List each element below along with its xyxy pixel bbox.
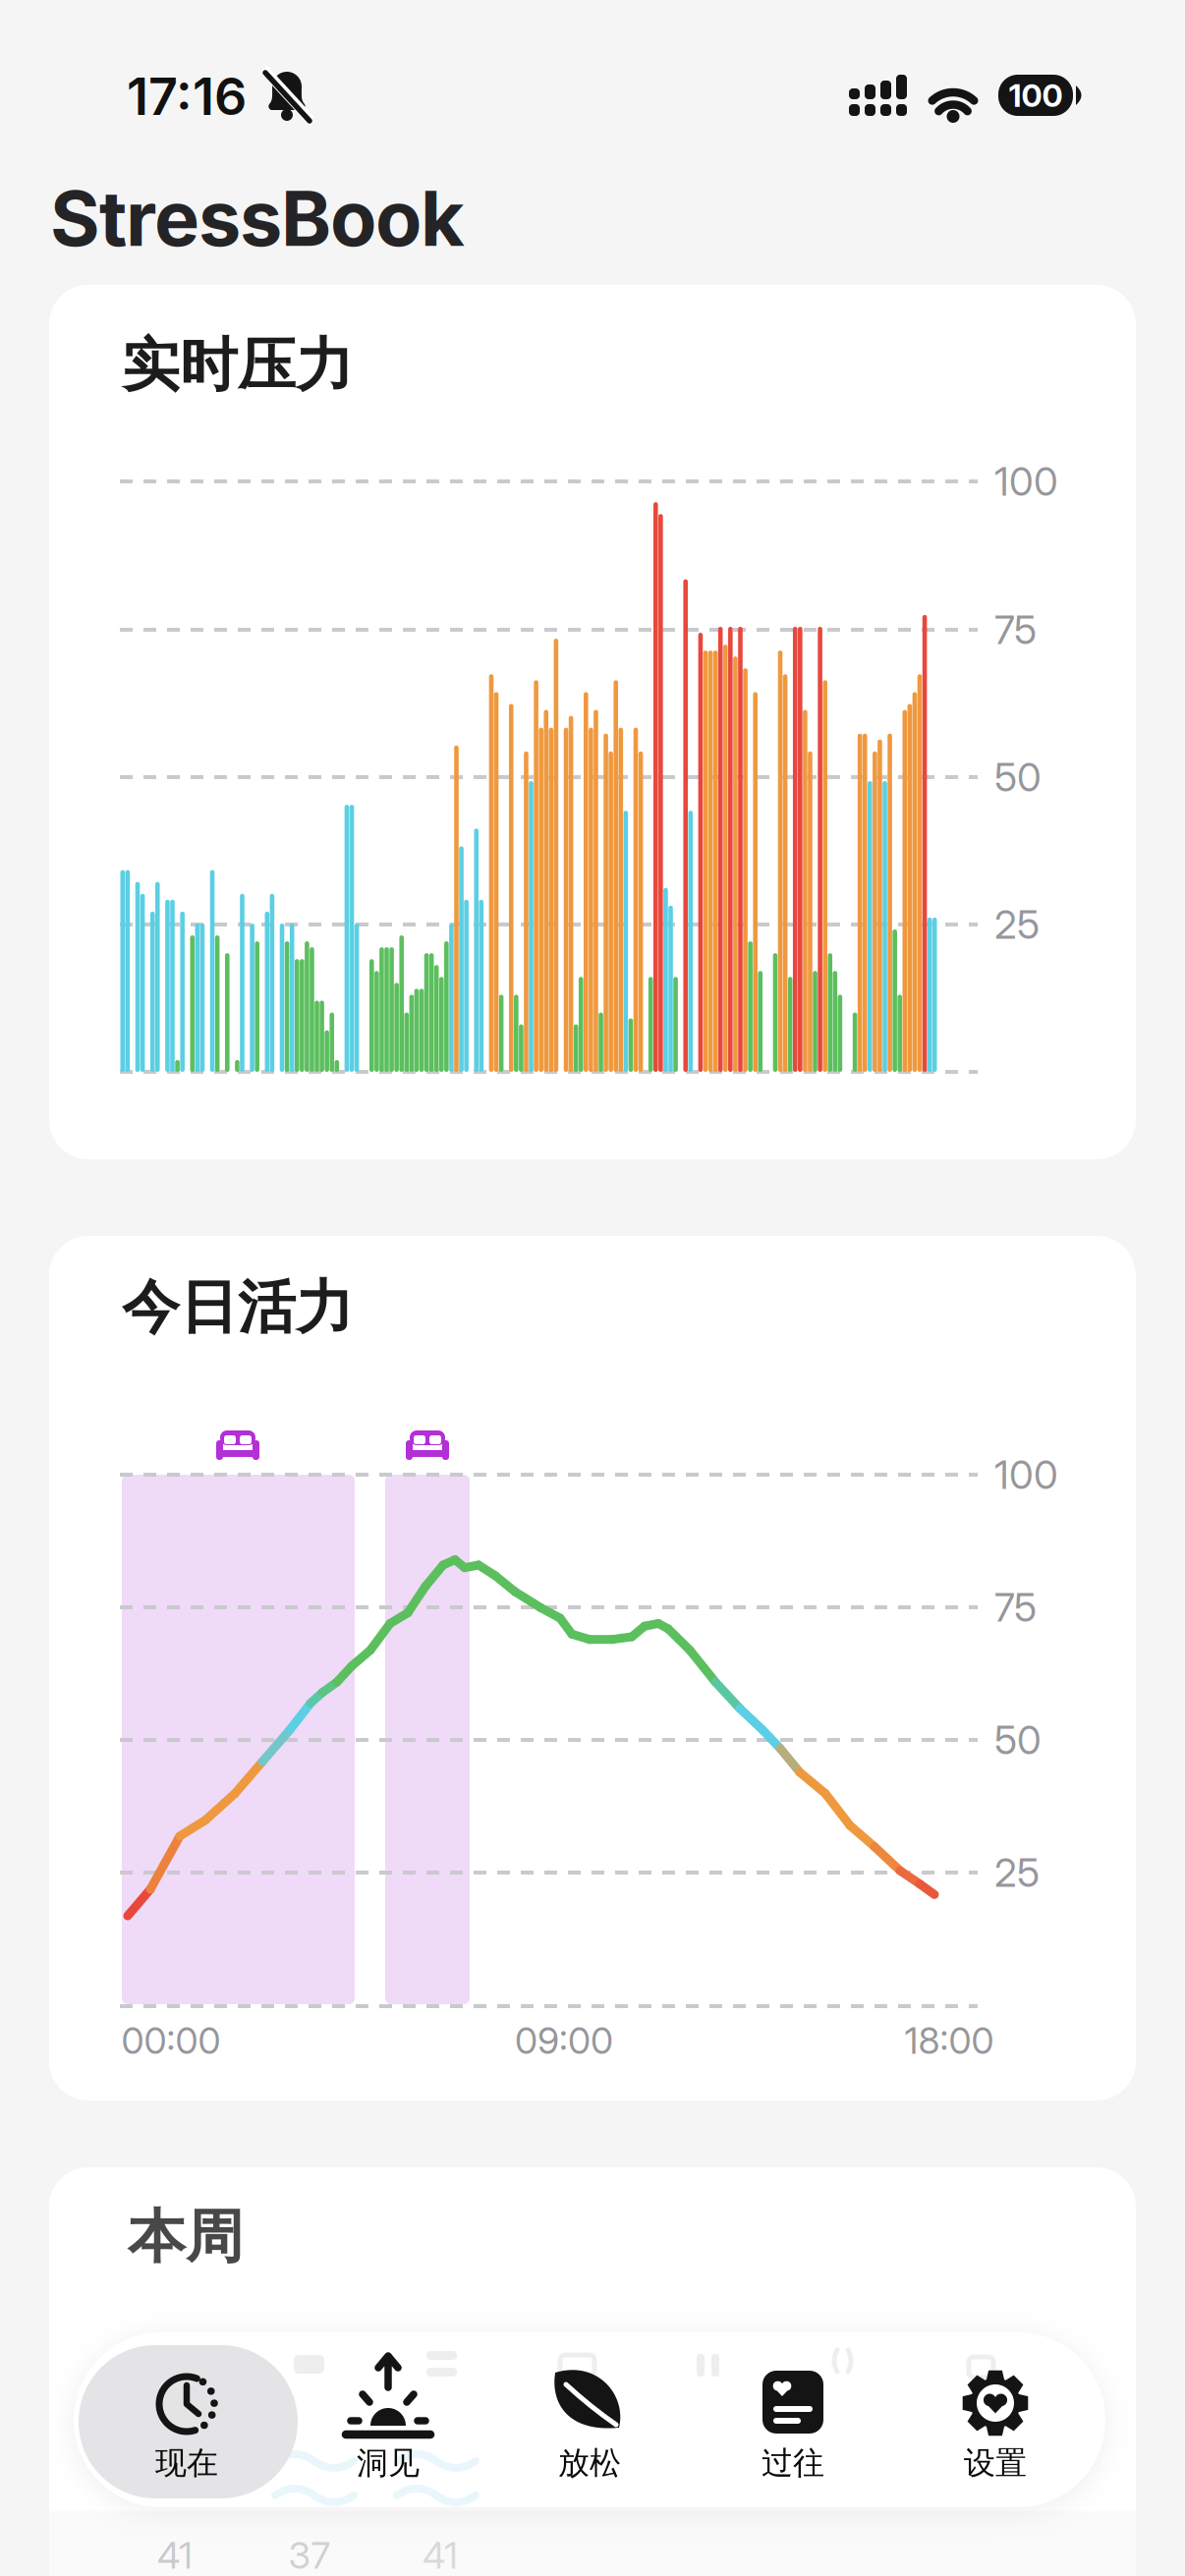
staticText: 00:00 <box>121 2019 221 2062</box>
staticText: 过往 <box>762 2444 824 2482</box>
staticText: 本周 <box>128 2202 244 2273</box>
staticText: 洞见 <box>357 2444 420 2482</box>
staticText: 50 <box>994 754 1042 800</box>
staticText: 41 <box>423 2534 458 2576</box>
staticText: StressBook <box>50 173 465 263</box>
staticText: 75 <box>994 1584 1037 1630</box>
button[interactable]: 洞见 <box>295 2345 481 2498</box>
staticText: 放松 <box>558 2444 621 2482</box>
staticText: 设置 <box>964 2444 1027 2482</box>
button[interactable]: 设置 <box>902 2345 1089 2498</box>
button[interactable]: 过往 <box>700 2345 886 2498</box>
button[interactable]: 放松 <box>496 2345 683 2498</box>
staticText: 实时压力 <box>122 330 354 401</box>
staticText: 18:00 <box>904 2019 994 2062</box>
staticText: 17:16 <box>127 66 247 126</box>
staticText: 50 <box>994 1717 1042 1763</box>
staticText: 41 <box>157 2534 193 2576</box>
staticText: 今日活力 <box>122 1272 354 1343</box>
staticText: 100 <box>994 1451 1058 1498</box>
staticText: 37 <box>288 2534 331 2576</box>
staticText: 75 <box>994 607 1037 653</box>
staticText: 25 <box>994 1849 1040 1896</box>
staticText: 100 <box>994 458 1058 505</box>
staticText: 09:00 <box>515 2019 613 2062</box>
staticText: 25 <box>994 901 1040 948</box>
staticText: 现在 <box>155 2444 218 2482</box>
button[interactable]: 现在 <box>79 2345 298 2498</box>
staticText: 100 <box>1009 77 1063 114</box>
